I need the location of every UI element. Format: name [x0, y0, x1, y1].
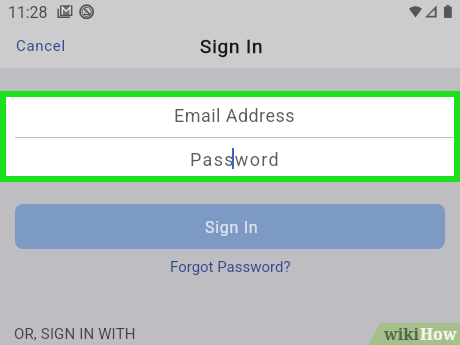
staticText: How — [420, 323, 457, 343]
button[interactable]: Cancel — [8, 33, 74, 59]
button[interactable]: Email Address — [0, 95, 460, 136]
button[interactable]: Sign In — [15, 204, 445, 249]
staticText: wiki — [384, 323, 420, 343]
staticText: Sign In — [205, 218, 259, 237]
staticText: OR, SIGN IN WITH — [14, 325, 136, 343]
staticText: 11:28 — [8, 3, 48, 22]
staticText: Sign In — [200, 35, 264, 57]
button[interactable]: Forgot Password? — [0, 256, 460, 278]
staticText: Email Address — [174, 105, 295, 126]
staticText: Cancel — [16, 37, 66, 55]
other: Status icons — [0, 0, 460, 24]
staticText: Password — [190, 149, 280, 170]
button[interactable]: Password — [0, 139, 460, 180]
staticText: Forgot Password? — [170, 258, 291, 276]
